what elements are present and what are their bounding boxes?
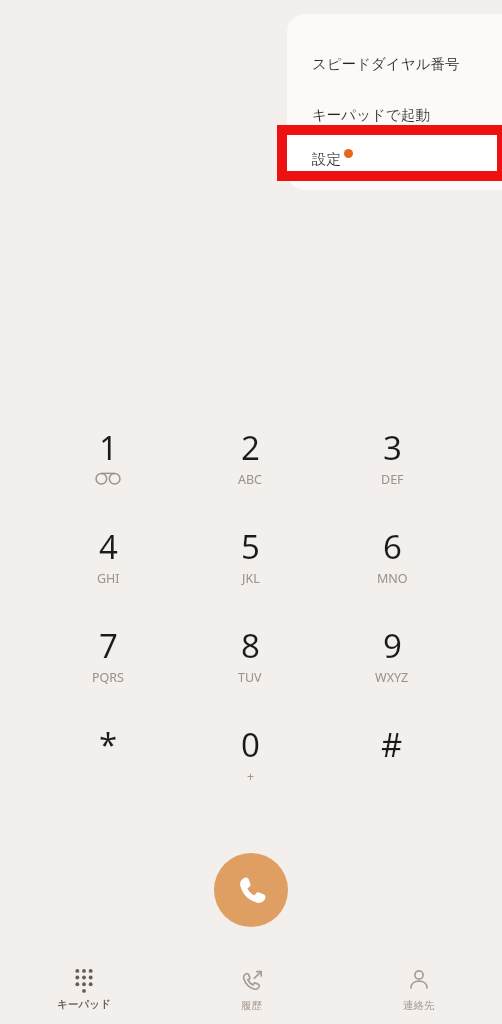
staticText: 2	[241, 425, 260, 470]
button[interactable]: 9	[335, 623, 449, 715]
button[interactable]: 連絡先	[335, 954, 502, 1024]
staticText: 履歴	[241, 999, 262, 1012]
button[interactable]: Call	[214, 853, 288, 927]
button[interactable]: 6	[335, 524, 449, 616]
button[interactable]: 7	[51, 623, 165, 715]
staticText: 連絡先	[403, 999, 435, 1012]
button[interactable]: 2	[193, 425, 307, 517]
button[interactable]: 4	[51, 524, 165, 616]
staticText: 5	[241, 524, 260, 569]
button[interactable]: 3	[335, 425, 449, 517]
staticText: キーパッドで起動	[312, 106, 430, 124]
staticText: 6	[383, 524, 402, 569]
button[interactable]: スピードダイヤル番号	[287, 38, 502, 90]
staticText: 1	[99, 425, 118, 470]
staticText: 3	[383, 425, 402, 470]
staticText: 8	[241, 623, 260, 668]
button[interactable]: 設定	[287, 130, 502, 188]
staticText: 9	[383, 623, 402, 668]
button[interactable]: 8	[193, 623, 307, 715]
staticText: #	[381, 722, 403, 767]
staticText: WXYZ	[375, 669, 409, 686]
button[interactable]: 1	[51, 425, 165, 517]
staticText: 4	[99, 524, 118, 569]
button[interactable]: 5	[193, 524, 307, 616]
button[interactable]: *	[51, 722, 165, 814]
staticText: +	[247, 768, 255, 785]
staticText: TUV	[238, 669, 262, 686]
staticText: スピードダイヤル番号	[312, 55, 460, 73]
staticText: MNO	[377, 570, 408, 587]
button[interactable]: キーパッド	[0, 954, 168, 1024]
staticText: *	[99, 722, 118, 767]
staticText: 設定	[312, 150, 341, 168]
staticText: DEF	[381, 471, 404, 488]
button[interactable]: 履歴	[168, 954, 335, 1024]
staticText: GHI	[97, 570, 120, 587]
staticText: 0	[241, 722, 260, 767]
staticText: 7	[99, 623, 118, 668]
button[interactable]: キーパッドで起動	[287, 90, 502, 140]
staticText: ABC	[238, 471, 263, 488]
button[interactable]: #	[335, 722, 449, 814]
button[interactable]: 0	[193, 722, 307, 814]
staticText: PQRS	[92, 669, 124, 686]
staticText: JKL	[242, 570, 260, 587]
staticText: キーパッド	[57, 998, 111, 1011]
